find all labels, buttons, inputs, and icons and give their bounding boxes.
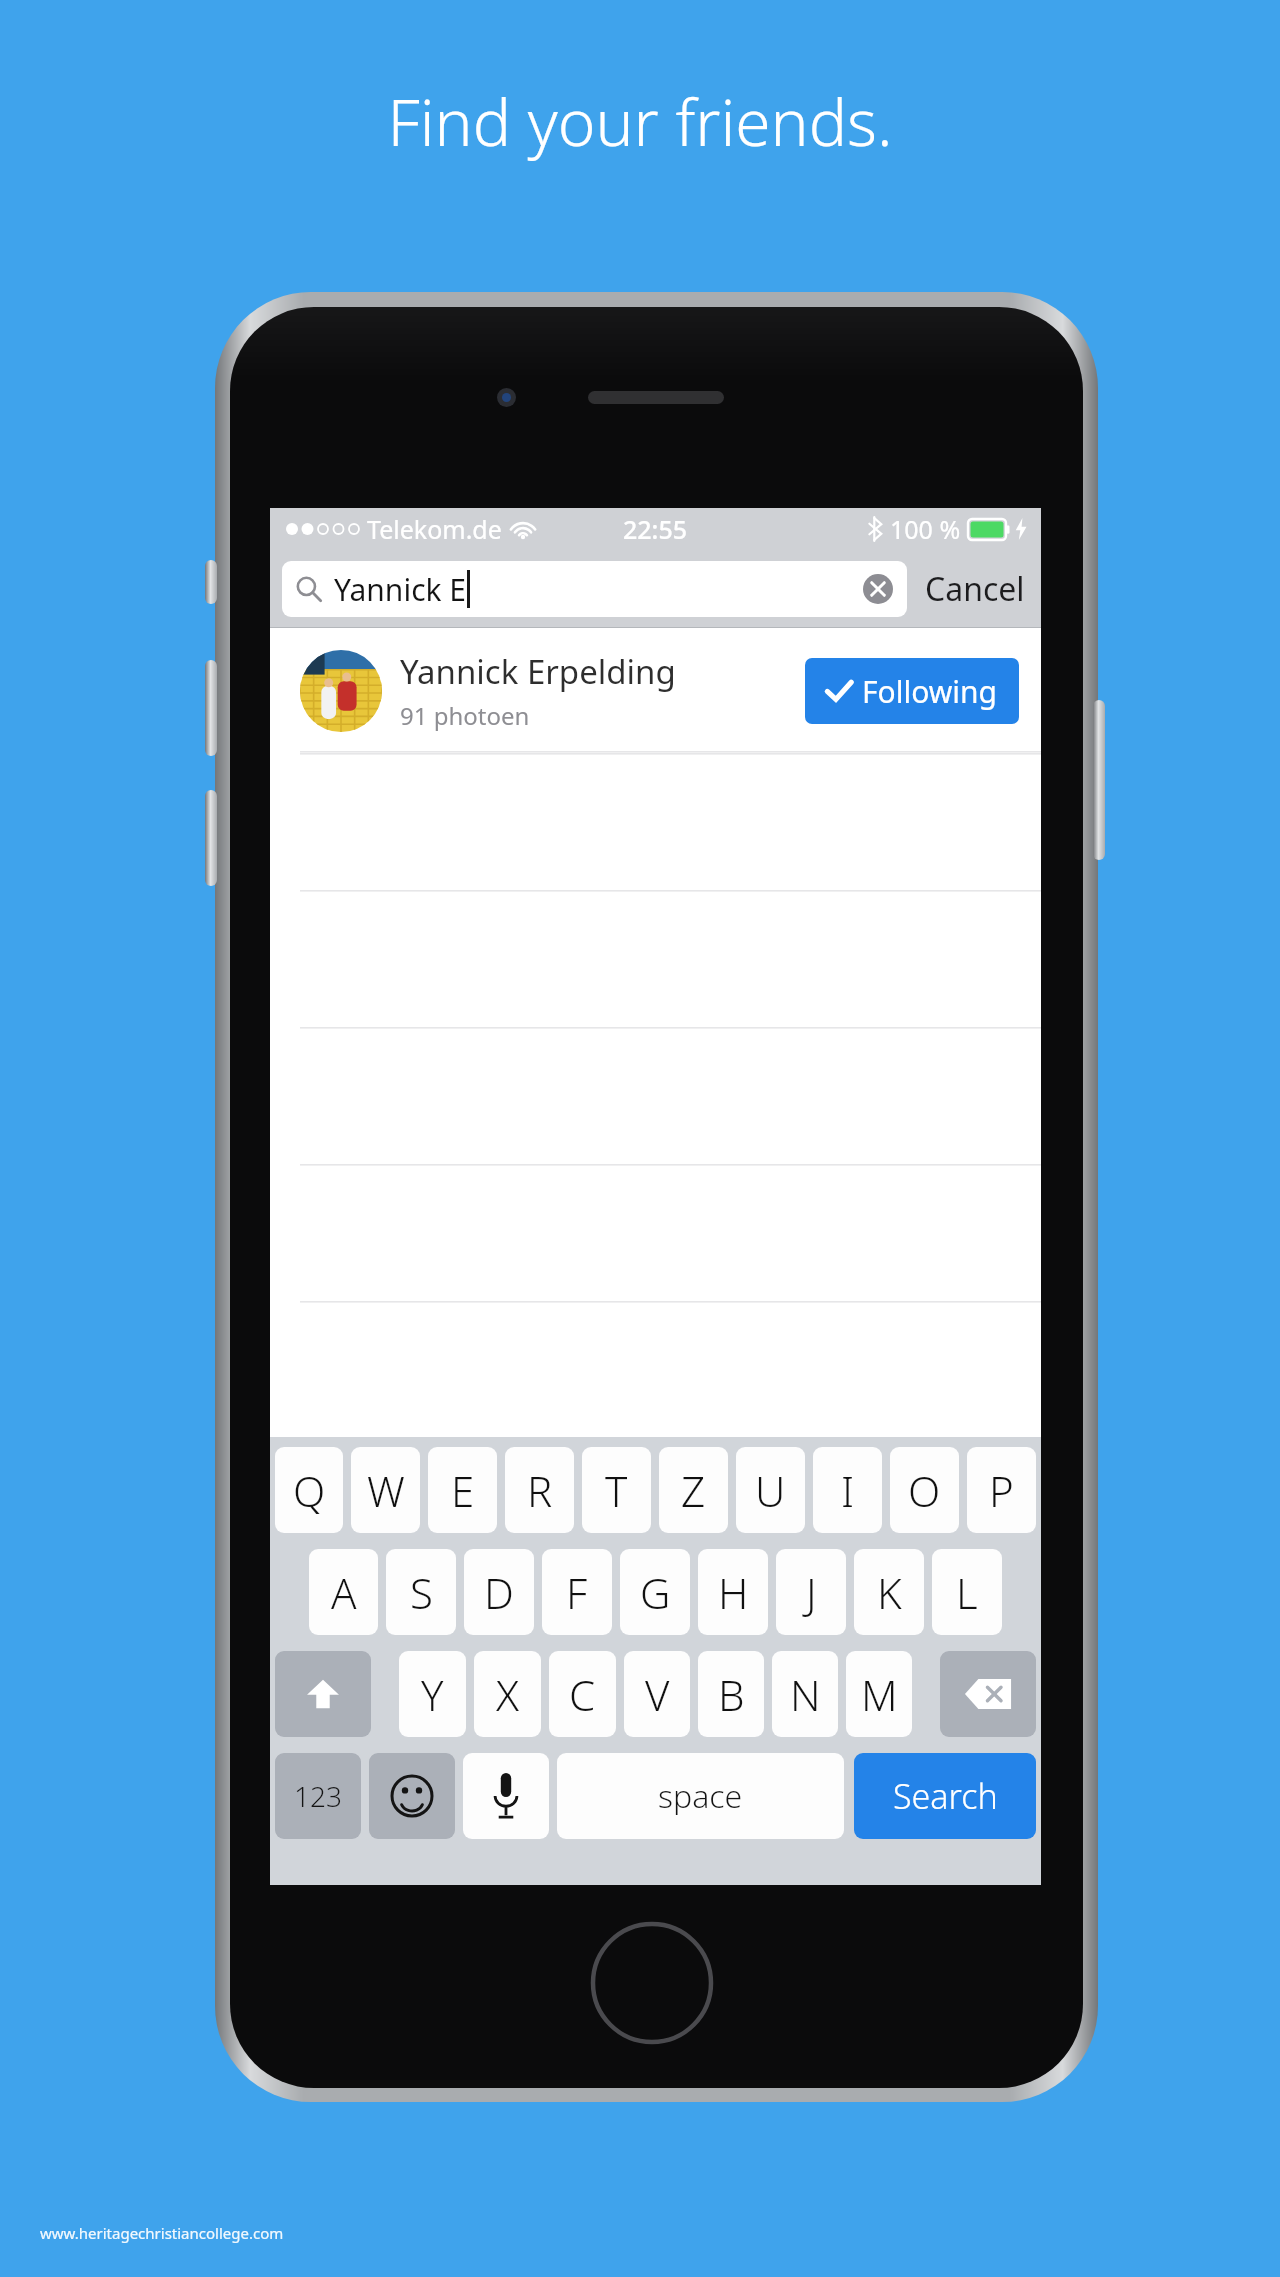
staticText: Y xyxy=(421,1666,444,1723)
staticText: X xyxy=(496,1666,519,1723)
button[interactable]: Yannick E xyxy=(282,561,907,617)
button[interactable]: A xyxy=(309,1549,378,1635)
staticText: R xyxy=(527,1462,553,1519)
button[interactable]: Shift xyxy=(275,1651,371,1737)
button[interactable]: C xyxy=(549,1651,616,1737)
button[interactable]: Dictation xyxy=(463,1753,549,1839)
staticText: O xyxy=(908,1462,941,1519)
button[interactable]: E xyxy=(428,1447,497,1533)
button[interactable]: Y xyxy=(399,1651,466,1737)
staticText: 100 % xyxy=(890,512,961,546)
staticText: A xyxy=(331,1564,357,1621)
button[interactable]: V xyxy=(624,1651,690,1737)
button[interactable]: L xyxy=(932,1549,1002,1635)
staticText: Q xyxy=(293,1462,326,1519)
button[interactable]: T xyxy=(582,1447,651,1533)
staticText: B xyxy=(718,1666,745,1723)
button[interactable]: N xyxy=(772,1651,838,1737)
staticText: M xyxy=(861,1666,898,1723)
staticText: C xyxy=(569,1666,596,1723)
staticText: T xyxy=(605,1462,628,1519)
button[interactable]: Home xyxy=(590,1921,714,2045)
staticText: Find your friends. xyxy=(387,78,893,165)
button[interactable]: Clear text xyxy=(863,574,893,604)
button[interactable]: G xyxy=(620,1549,690,1635)
staticText: 91 photoen xyxy=(400,699,530,732)
button[interactable]: Search xyxy=(854,1753,1036,1839)
staticText: Yannick Erpelding xyxy=(400,649,676,694)
button[interactable]: Following xyxy=(805,658,1019,724)
button[interactable]: X xyxy=(474,1651,541,1737)
button[interactable]: F xyxy=(542,1549,612,1635)
staticText: L xyxy=(956,1564,978,1621)
staticText: Z xyxy=(681,1462,706,1519)
staticText: I xyxy=(841,1462,855,1519)
staticText: 123 xyxy=(294,1777,342,1815)
staticText: F xyxy=(566,1564,588,1621)
button[interactable]: U xyxy=(736,1447,805,1533)
staticText: W xyxy=(367,1462,405,1519)
button[interactable]: Emoji xyxy=(369,1753,455,1839)
button[interactable]: D xyxy=(464,1549,534,1635)
staticText: Search xyxy=(893,1773,998,1819)
button[interactable]: I xyxy=(813,1447,882,1533)
staticText: V xyxy=(645,1666,670,1723)
staticText: 22:55 xyxy=(623,512,688,546)
button[interactable]: Side button xyxy=(1093,700,1105,860)
button[interactable]: Side button xyxy=(205,660,217,756)
staticText: Yannick E xyxy=(334,569,467,610)
button[interactable]: M xyxy=(846,1651,912,1737)
staticText: Telekom.de xyxy=(367,512,502,546)
staticText: N xyxy=(790,1666,821,1723)
staticText: www.heritagechristiancollege.com xyxy=(40,2223,284,2243)
button[interactable]: Side button xyxy=(205,560,217,604)
staticText: Following xyxy=(862,671,998,712)
button[interactable]: W xyxy=(351,1447,420,1533)
staticText: S xyxy=(410,1564,433,1621)
button[interactable]: Yannick Erpelding xyxy=(270,628,1041,753)
button[interactable]: H xyxy=(698,1549,768,1635)
staticText: J xyxy=(806,1564,817,1621)
button[interactable]: R xyxy=(505,1447,574,1533)
staticText: D xyxy=(484,1564,514,1621)
button[interactable]: O xyxy=(890,1447,959,1533)
button[interactable]: Cancel xyxy=(921,559,1029,619)
button[interactable]: Backspace xyxy=(940,1651,1036,1737)
staticText: K xyxy=(877,1564,902,1621)
staticText: E xyxy=(451,1462,475,1519)
staticText: P xyxy=(989,1462,1014,1519)
staticText: space xyxy=(658,1774,743,1818)
button[interactable]: Q xyxy=(275,1447,343,1533)
staticText: H xyxy=(718,1564,749,1621)
button[interactable]: P xyxy=(967,1447,1036,1533)
staticText: U xyxy=(755,1462,786,1519)
button[interactable]: J xyxy=(776,1549,846,1635)
button[interactable]: space xyxy=(557,1753,844,1839)
staticText: Cancel xyxy=(925,567,1025,611)
button[interactable]: K xyxy=(854,1549,924,1635)
button[interactable]: Z xyxy=(659,1447,728,1533)
button[interactable]: S xyxy=(386,1549,456,1635)
button[interactable]: 123 xyxy=(275,1753,361,1839)
button[interactable]: Side button xyxy=(205,790,217,886)
button[interactable]: B xyxy=(698,1651,764,1737)
staticText: G xyxy=(640,1564,671,1621)
